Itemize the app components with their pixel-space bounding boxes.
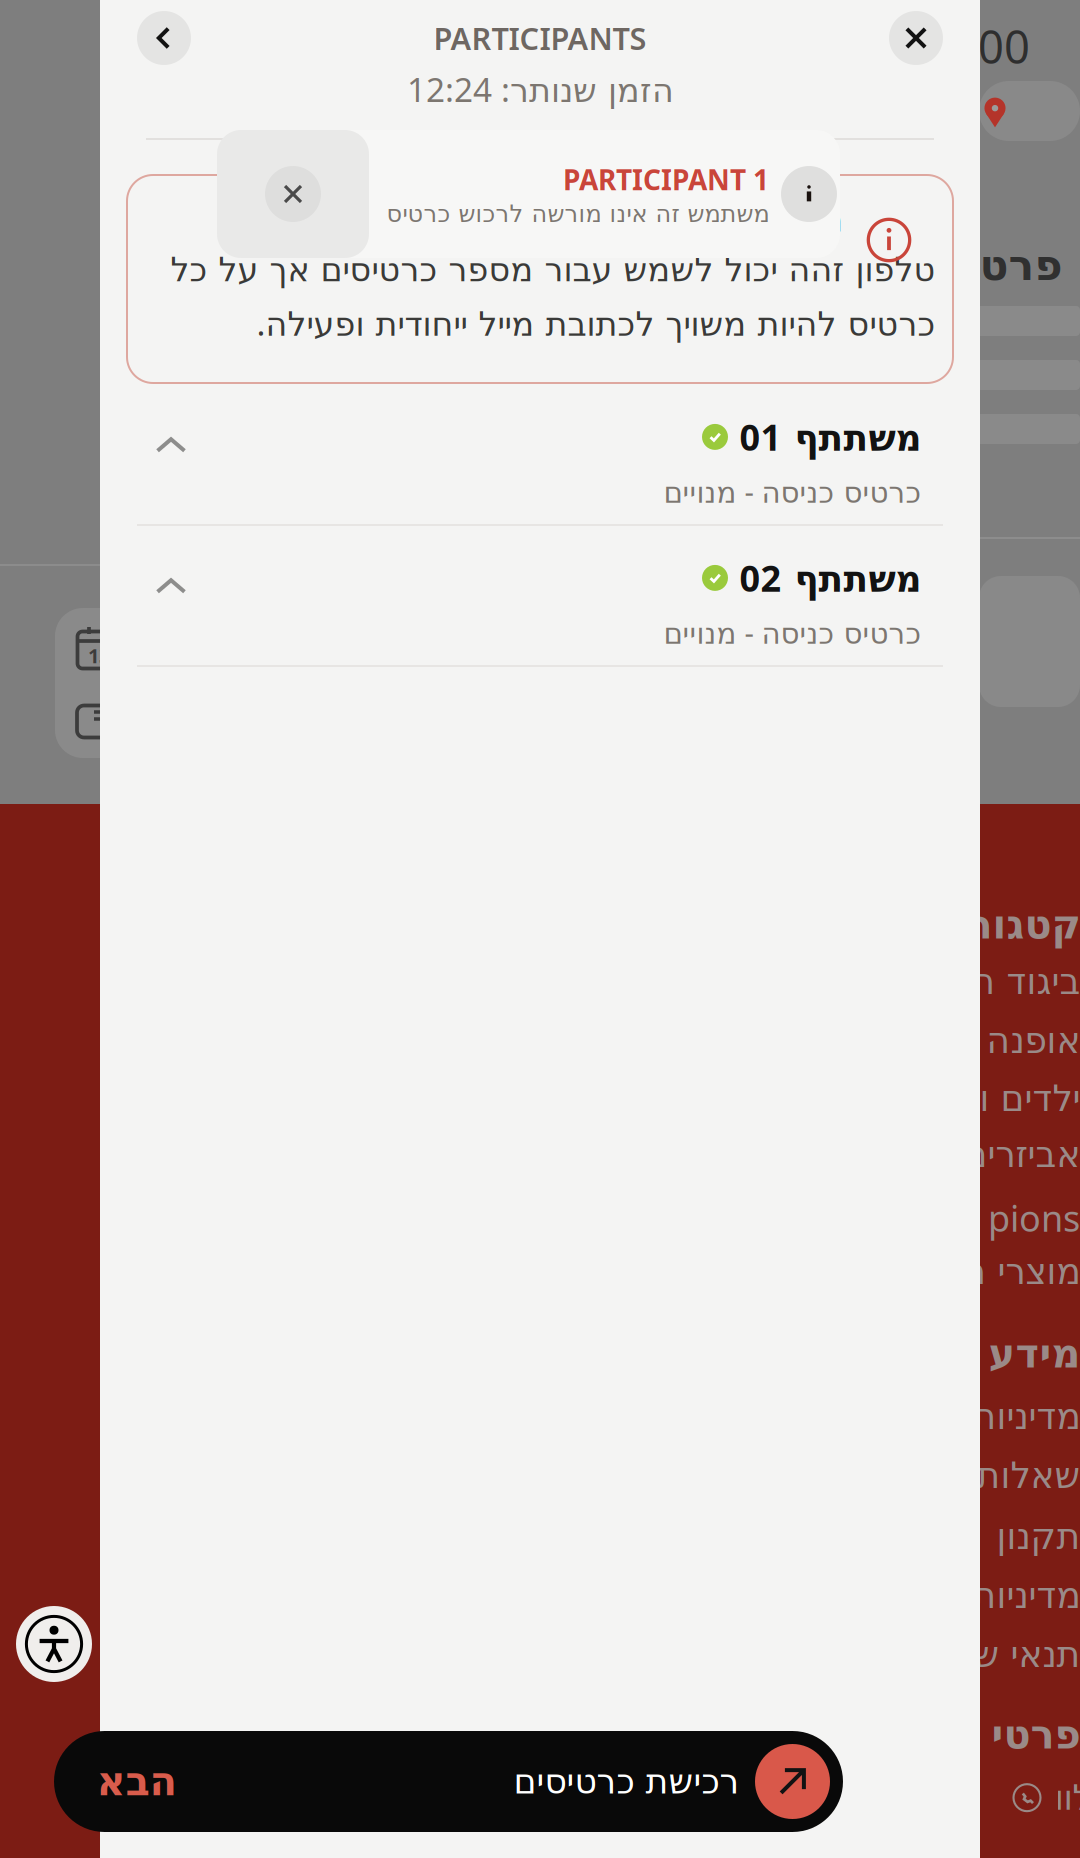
staticText: משתמש זה אינו מורשה לרכוש כרטיס xyxy=(386,200,769,227)
staticText: מוצרי ה xyxy=(962,1251,1080,1292)
staticText: שאלות xyxy=(976,1455,1080,1496)
staticText: תנאי ש xyxy=(973,1634,1080,1675)
button[interactable]: משתתף 02 xyxy=(137,526,943,665)
staticText: 13 xyxy=(88,642,110,669)
staticText: קטגוריות xyxy=(915,902,1080,947)
staticText: מידע xyxy=(988,1331,1080,1376)
staticText: כרטיס כניסה - מנויים xyxy=(663,613,921,652)
button[interactable]: Dismiss xyxy=(217,130,369,258)
staticText: פרטי xyxy=(991,1712,1080,1757)
button[interactable]: Back xyxy=(137,11,191,65)
staticText: אופנה xyxy=(986,1020,1080,1061)
staticText: ילדים ו xyxy=(979,1078,1080,1119)
staticText: PARTICIPANT 1 xyxy=(563,161,769,198)
button[interactable]: Close xyxy=(889,11,943,65)
staticText: פרט xyxy=(979,241,1062,289)
staticText: משתתף 02 xyxy=(739,554,921,602)
staticText: מדיניות xyxy=(972,1396,1080,1437)
button[interactable]: More info xyxy=(781,166,837,222)
staticText: הבא xyxy=(96,1759,176,1804)
staticText: טלפון זהה יכול לשמש עבור מספר כרטיסים אך… xyxy=(170,251,935,289)
staticText: לוו xyxy=(1054,1778,1080,1817)
staticText: PARTICIPANTS xyxy=(433,18,646,58)
button[interactable]: משתתף 01 xyxy=(137,385,943,524)
staticText: רכישת כרטיסים xyxy=(513,1762,739,1801)
staticText: משתתף 01 xyxy=(739,413,921,461)
staticText: אביזרים xyxy=(963,1134,1080,1175)
staticText: 00 xyxy=(978,16,1030,76)
staticText: ביגוד ה xyxy=(971,961,1080,1002)
staticText: מדיניות xyxy=(972,1575,1080,1616)
staticText: pions xyxy=(988,1194,1080,1242)
staticText: משתמש זה אינו מורשה לרכוש כרטיס xyxy=(313,201,843,239)
staticText: הזמן שנותר: 12:24 xyxy=(406,67,673,111)
staticText: תקנון xyxy=(996,1516,1080,1557)
button[interactable]: הבא xyxy=(54,1731,843,1832)
staticText: כרטיס כניסה - מנויים xyxy=(663,472,921,511)
button[interactable]: Accessibility options xyxy=(16,1606,92,1682)
staticText: כרטיס להיות משויך לכתובת מייל ייחודית ופ… xyxy=(256,301,935,345)
